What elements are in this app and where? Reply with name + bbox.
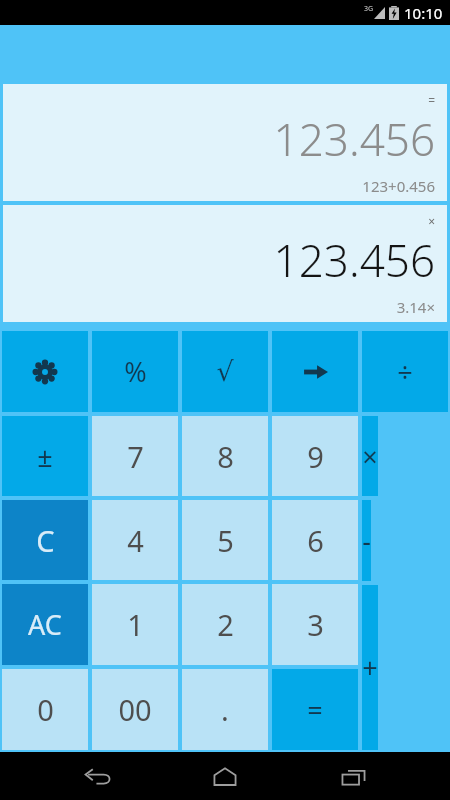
- button[interactable]: 00: [92, 669, 178, 750]
- button[interactable]: 5: [182, 500, 268, 580]
- staticText: ÷: [397, 353, 413, 390]
- button[interactable]: Home: [195, 752, 255, 800]
- staticText: 123.456: [273, 109, 435, 169]
- staticText: 3.14×: [396, 297, 435, 317]
- staticText: ±: [37, 438, 53, 475]
- button[interactable]: Subtract: [362, 500, 371, 581]
- button[interactable]: 0: [2, 669, 88, 750]
- staticText: 00: [118, 690, 152, 729]
- staticText: ×: [362, 438, 378, 475]
- button[interactable]: Multiply: [362, 416, 378, 496]
- staticText: 8: [217, 437, 234, 476]
- button[interactable]: 9: [272, 416, 358, 496]
- staticText: +: [362, 649, 378, 686]
- button[interactable]: .: [182, 669, 268, 750]
- staticText: 10:10: [404, 3, 443, 23]
- staticText: C: [36, 521, 55, 560]
- button[interactable]: 3: [272, 584, 358, 665]
- button[interactable]: Recents: [323, 752, 383, 800]
- button[interactable]: 6: [272, 500, 358, 580]
- staticText: %: [124, 353, 147, 390]
- staticText: 7: [127, 437, 144, 476]
- staticText: √: [216, 356, 234, 387]
- staticText: AC: [28, 606, 62, 643]
- staticText: =: [307, 691, 323, 728]
- button[interactable]: Percent: [92, 331, 178, 412]
- staticText: .: [221, 690, 229, 729]
- button[interactable]: Square root: [182, 331, 268, 412]
- staticText: 3: [307, 605, 324, 644]
- button[interactable]: AC: [2, 584, 88, 665]
- button[interactable]: 8: [182, 416, 268, 496]
- button[interactable]: Equals: [272, 669, 358, 750]
- staticText: 4: [127, 521, 144, 560]
- button[interactable]: Back: [68, 752, 128, 800]
- staticText: 2: [217, 605, 234, 644]
- staticText: =: [428, 92, 435, 108]
- button[interactable]: Divide: [362, 331, 448, 412]
- button[interactable]: 4: [92, 500, 178, 580]
- button[interactable]: Settings: [2, 331, 88, 412]
- staticText: 9: [307, 437, 324, 476]
- button[interactable]: 1: [92, 584, 178, 665]
- staticText: ×: [428, 213, 435, 229]
- staticText: 3G: [364, 4, 374, 14]
- button[interactable]: 2: [182, 584, 268, 665]
- staticText: -: [362, 522, 371, 559]
- button[interactable]: Add: [362, 585, 378, 750]
- button[interactable]: Backspace: [272, 331, 358, 412]
- button[interactable]: =: [3, 84, 447, 201]
- button[interactable]: ×: [3, 205, 447, 322]
- button[interactable]: C: [2, 500, 88, 580]
- staticText: 123.456: [273, 230, 435, 290]
- staticText: 6: [307, 521, 324, 560]
- staticText: 5: [217, 521, 234, 560]
- button[interactable]: Plus minus: [2, 416, 88, 496]
- staticText: 1: [127, 605, 144, 644]
- button[interactable]: 7: [92, 416, 178, 496]
- staticText: 123+0.456: [362, 176, 435, 196]
- staticText: 0: [37, 690, 54, 729]
